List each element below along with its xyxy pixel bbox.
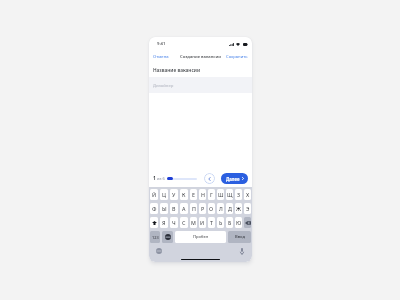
button[interactable]: У bbox=[170, 189, 178, 200]
button[interactable]: Я bbox=[160, 217, 168, 228]
button[interactable]: Ю bbox=[235, 217, 242, 228]
staticText: Е bbox=[192, 191, 195, 198]
button[interactable]: С bbox=[180, 217, 188, 228]
staticText: С bbox=[182, 219, 186, 226]
button[interactable]: Ф bbox=[150, 203, 158, 214]
button[interactable]: Ввод bbox=[228, 231, 251, 243]
button[interactable]: З bbox=[235, 189, 242, 200]
button[interactable]: Й bbox=[150, 189, 158, 200]
button[interactable]: Б bbox=[226, 217, 233, 228]
button[interactable]: Г bbox=[208, 189, 215, 200]
staticText: Й bbox=[152, 191, 157, 198]
staticText: Дизайнер bbox=[153, 82, 174, 88]
staticText: Отмена bbox=[153, 54, 169, 60]
staticText: Ы bbox=[162, 205, 167, 212]
staticText: 9:41 bbox=[157, 41, 166, 47]
button[interactable]: А bbox=[180, 203, 188, 214]
button[interactable]: Е bbox=[190, 189, 197, 200]
button[interactable]: Ц bbox=[160, 189, 168, 200]
staticText: Л bbox=[219, 205, 223, 212]
button[interactable]: Ь bbox=[217, 217, 224, 228]
staticText: Х bbox=[246, 191, 250, 198]
staticText: Ф bbox=[152, 205, 157, 212]
button[interactable]: М bbox=[190, 217, 197, 228]
staticText: Название вакансии bbox=[153, 67, 201, 73]
staticText: 123 bbox=[152, 235, 159, 240]
staticText: Сохранить bbox=[226, 54, 248, 60]
staticText: Г bbox=[210, 191, 213, 198]
staticText: из 6 bbox=[157, 176, 165, 181]
staticText: Пробел bbox=[193, 234, 209, 240]
button[interactable]: Пробел bbox=[175, 231, 226, 243]
button[interactable]: В bbox=[170, 203, 178, 214]
staticText: Ввод bbox=[235, 234, 245, 240]
button[interactable]: Назад bbox=[204, 173, 215, 184]
staticText: В bbox=[172, 205, 176, 212]
staticText: З bbox=[237, 191, 241, 198]
staticText: Д bbox=[228, 205, 232, 212]
button[interactable]: Д bbox=[226, 203, 233, 214]
staticText: К bbox=[182, 191, 186, 198]
staticText: П bbox=[192, 205, 196, 212]
staticText: Т bbox=[210, 219, 213, 226]
button[interactable]: И bbox=[199, 217, 206, 228]
staticText: Ю bbox=[236, 219, 242, 226]
staticText: О bbox=[209, 205, 214, 212]
button[interactable]: Р bbox=[199, 203, 206, 214]
other: Диктовка bbox=[240, 248, 244, 255]
button[interactable]: Ш bbox=[217, 189, 224, 200]
staticText: Ш bbox=[218, 191, 224, 198]
staticText: Б bbox=[228, 219, 232, 226]
staticText: Ж bbox=[236, 205, 241, 212]
button[interactable]: Отмена bbox=[149, 52, 173, 62]
staticText: У bbox=[172, 191, 176, 198]
button[interactable]: Л bbox=[217, 203, 224, 214]
staticText: Ь bbox=[219, 219, 223, 226]
staticText: Щ bbox=[227, 191, 233, 198]
button[interactable]: П bbox=[190, 203, 197, 214]
staticText: Далее bbox=[226, 176, 240, 182]
button[interactable]: Н bbox=[199, 189, 206, 200]
button[interactable]: Shift bbox=[150, 217, 158, 228]
button[interactable]: Emoji bbox=[162, 231, 173, 243]
button[interactable]: Ы bbox=[160, 203, 168, 214]
button[interactable]: Далее bbox=[221, 173, 248, 184]
staticText: И bbox=[200, 219, 205, 226]
button[interactable]: Сохранить bbox=[222, 52, 252, 62]
button[interactable]: Дизайнер bbox=[149, 77, 252, 93]
button[interactable]: Backspace bbox=[244, 217, 251, 228]
button[interactable]: Сменить язык bbox=[156, 248, 162, 254]
staticText: Н bbox=[201, 191, 205, 198]
button[interactable]: Э bbox=[244, 203, 251, 214]
staticText: Ц bbox=[162, 191, 166, 198]
button[interactable]: Ж bbox=[235, 203, 242, 214]
staticText: Р bbox=[201, 205, 205, 212]
staticText: Э bbox=[246, 205, 250, 212]
button[interactable]: К bbox=[180, 189, 188, 200]
button[interactable]: О bbox=[208, 203, 215, 214]
staticText: Я bbox=[162, 219, 166, 226]
button[interactable]: Ч bbox=[170, 217, 178, 228]
button[interactable]: Щ bbox=[226, 189, 233, 200]
staticText: М bbox=[191, 219, 196, 226]
staticText: Создание вакансии bbox=[180, 54, 221, 60]
staticText: А bbox=[182, 205, 186, 212]
staticText: 1 bbox=[153, 175, 156, 182]
button[interactable]: Х bbox=[244, 189, 251, 200]
button[interactable]: Т bbox=[208, 217, 215, 228]
button[interactable]: 123 bbox=[150, 231, 160, 243]
staticText: Ч bbox=[172, 219, 176, 226]
